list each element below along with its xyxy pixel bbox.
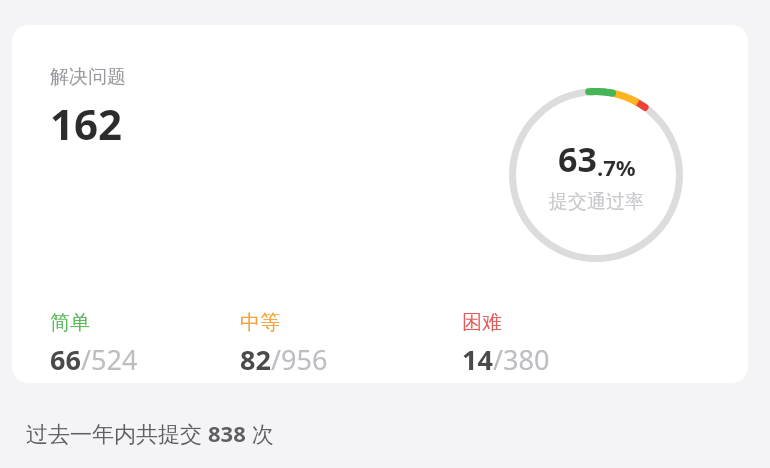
staticText: 次 bbox=[246, 418, 274, 448]
button[interactable]: 提交通过率 63.7% bbox=[497, 78, 694, 271]
staticText: 82 bbox=[240, 341, 271, 378]
staticText: 838 bbox=[208, 418, 246, 448]
staticText: 困难 bbox=[462, 310, 502, 335]
staticText: 63 bbox=[558, 136, 597, 182]
staticText: 提交通过率 bbox=[549, 190, 644, 214]
staticText: 66 bbox=[50, 341, 81, 378]
button[interactable]: 中等 bbox=[240, 310, 462, 378]
staticText: 14 bbox=[462, 341, 493, 378]
staticText: .7% bbox=[597, 152, 636, 182]
staticText: 162 bbox=[50, 95, 123, 152]
button[interactable]: 简单 bbox=[12, 310, 240, 378]
staticText: /956 bbox=[271, 341, 328, 378]
staticText: 解决问题 bbox=[50, 65, 126, 89]
button[interactable]: 解决问题 bbox=[12, 25, 748, 383]
button[interactable]: 过去一年内共提交 bbox=[26, 418, 274, 448]
staticText: /380 bbox=[493, 341, 550, 378]
staticText: 过去一年内共提交 bbox=[26, 418, 208, 448]
button[interactable]: 困难 bbox=[462, 310, 682, 378]
staticText: 中等 bbox=[240, 310, 280, 335]
staticText: /524 bbox=[81, 341, 138, 378]
staticText: 简单 bbox=[50, 310, 90, 335]
